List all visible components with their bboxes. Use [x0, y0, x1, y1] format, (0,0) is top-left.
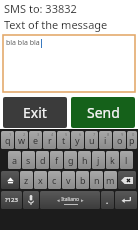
staticText: a [12, 154, 18, 166]
staticText: c [52, 174, 57, 186]
button[interactable]: w [15, 131, 28, 149]
staticText: m [106, 174, 115, 186]
button[interactable]: z [20, 171, 33, 189]
button[interactable]: x [34, 171, 47, 189]
staticText: o [117, 134, 123, 146]
button[interactable]: Send [71, 97, 135, 128]
button[interactable]: s [22, 151, 35, 169]
button[interactable]: e [29, 131, 42, 149]
button[interactable]: l [120, 151, 133, 169]
button[interactable]: b [76, 171, 89, 189]
button[interactable]: m [104, 171, 117, 189]
button[interactable]: o [113, 131, 126, 149]
staticText: u [89, 134, 95, 146]
staticText: Exit [23, 103, 47, 122]
staticText: w [18, 134, 26, 146]
staticText: 2 [23, 132, 26, 137]
staticText: . [106, 195, 109, 206]
button[interactable]: i [99, 131, 112, 149]
staticText: 6 [79, 132, 82, 137]
button[interactable]: c [48, 171, 61, 189]
staticText: e [33, 134, 39, 146]
staticText: 0 [132, 132, 135, 137]
button[interactable]: k [106, 151, 119, 169]
button[interactable]: ?123 [1, 191, 22, 209]
staticText: SMS to: 33832 [4, 1, 77, 16]
staticText: p [129, 134, 135, 146]
button[interactable]: j [92, 151, 105, 169]
staticText: Text of the message [4, 17, 108, 32]
staticText: 3 [37, 132, 40, 137]
staticText: q [5, 134, 11, 146]
staticText: 8 [107, 132, 110, 137]
staticText: h [82, 154, 88, 166]
button[interactable]: Backspace [118, 171, 136, 189]
staticText: 1 [9, 132, 12, 137]
staticText: Send [87, 103, 120, 122]
button[interactable]: h [78, 151, 91, 169]
staticText: f [55, 154, 59, 166]
staticText: n [94, 174, 100, 186]
staticText: bla bla bla [6, 38, 40, 48]
button[interactable]: t [57, 131, 70, 149]
staticText: ◂ [57, 197, 60, 203]
staticText: g [68, 154, 74, 166]
staticText: 7 [93, 132, 96, 137]
staticText: ▸ [81, 197, 84, 203]
button[interactable]: p [127, 131, 137, 149]
button[interactable]: Enter [115, 191, 137, 209]
staticText: i [104, 134, 107, 146]
staticText: t [62, 134, 66, 146]
staticText: k [110, 154, 115, 166]
button[interactable]: q [1, 131, 14, 149]
button[interactable]: g [64, 151, 77, 169]
staticText: z [24, 174, 29, 186]
button[interactable]: Exit [3, 97, 67, 128]
staticText: b [80, 174, 86, 186]
staticText: d [40, 154, 46, 166]
staticText: x [38, 174, 43, 186]
staticText: 5 [65, 132, 68, 137]
staticText: 9 [121, 132, 124, 137]
staticText: r [48, 134, 52, 146]
staticText: y [75, 134, 80, 146]
staticText: Italiano [60, 196, 81, 203]
button[interactable]: v [62, 171, 75, 189]
staticText: v [66, 174, 71, 186]
button[interactable]: n [90, 171, 103, 189]
staticText: l [125, 154, 128, 166]
button[interactable]: Voice input [23, 191, 39, 209]
staticText: s [26, 154, 31, 166]
button[interactable]: y [71, 131, 84, 149]
button[interactable]: bla bla bla [3, 35, 135, 92]
button[interactable]: . [101, 191, 114, 209]
staticText: 4 [51, 132, 54, 137]
staticText: j [97, 154, 100, 166]
button[interactable]: u [85, 131, 98, 149]
staticText: ?123 [5, 196, 18, 204]
button[interactable]: Shift [1, 171, 19, 189]
button[interactable]: f [50, 151, 63, 169]
button[interactable]: Space, Italiano [40, 191, 100, 209]
button[interactable]: d [36, 151, 49, 169]
button[interactable]: r [43, 131, 56, 149]
button[interactable]: a [8, 151, 21, 169]
